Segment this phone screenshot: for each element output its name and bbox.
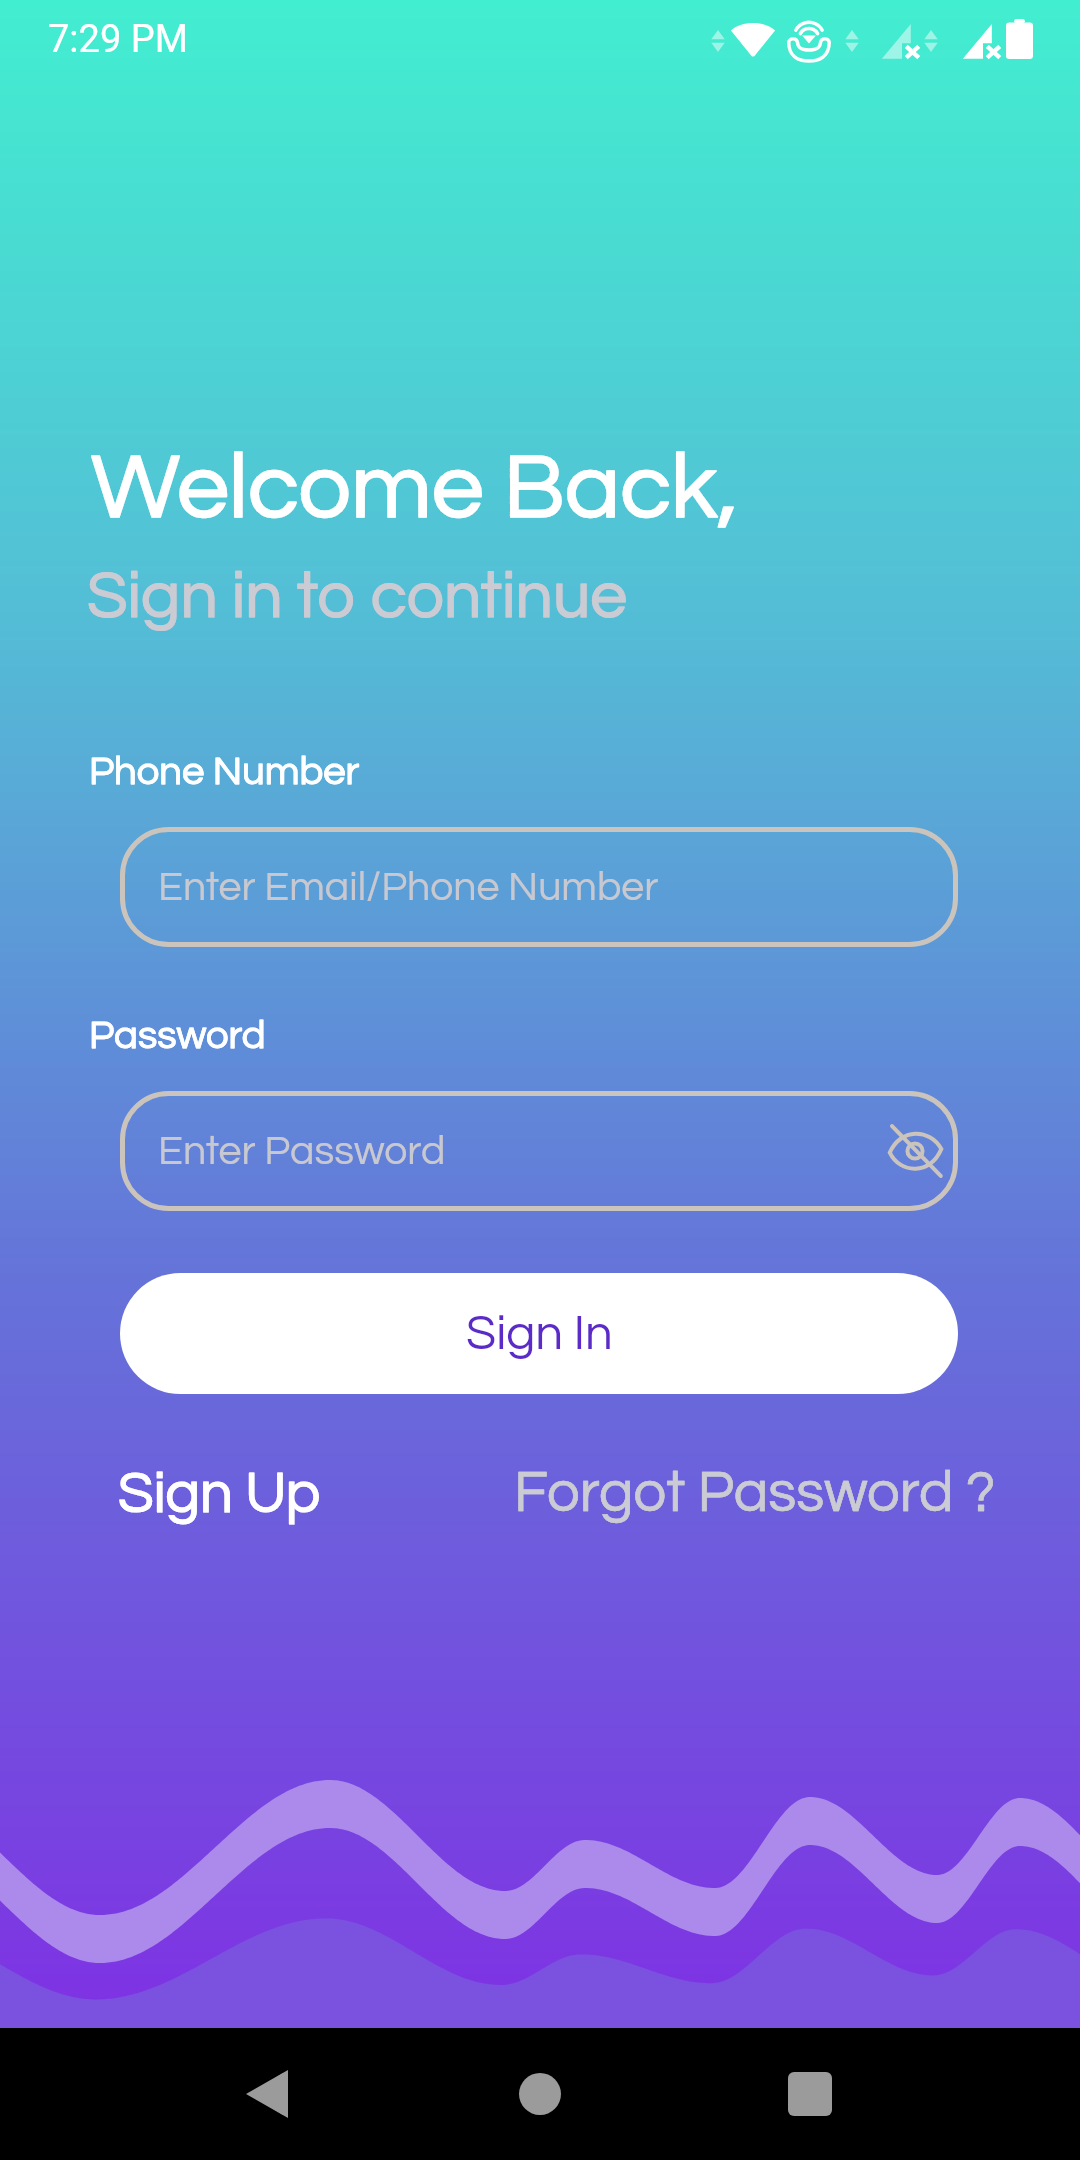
staticText: Forgot Password ? [514, 1463, 996, 1523]
button[interactable]: Sign In [120, 1273, 958, 1394]
staticText: Password [89, 1015, 266, 1056]
staticText: Sign Up [118, 1464, 321, 1524]
button[interactable]: Forgot Password ? [514, 1463, 996, 1523]
button[interactable]: Enter Password [120, 1091, 958, 1211]
staticText: Enter Password [158, 1130, 446, 1172]
button[interactable]: Home [480, 2053, 600, 2135]
button[interactable]: Back [207, 2053, 327, 2135]
staticText: Welcome Back, [91, 441, 738, 537]
staticText: Forgot Password ? [514, 1463, 996, 1523]
staticText: Enter Email/Phone Number [158, 866, 659, 908]
button[interactable]: Recent apps [750, 2053, 870, 2135]
staticText: 7:29 PM [48, 17, 188, 62]
staticText: Phone Number [89, 751, 360, 792]
button[interactable]: Sign Up [118, 1464, 321, 1524]
staticText: Phone Number [89, 751, 360, 792]
button[interactable]: Enter Email/Phone Number [120, 827, 958, 947]
staticText: Sign in to continue [87, 563, 628, 631]
staticText: Password [89, 1015, 266, 1056]
staticText: Sign In [466, 1309, 613, 1359]
staticText: Sign in to continue [87, 563, 628, 631]
button[interactable]: Toggle password visibility [887, 1125, 943, 1177]
staticText: Sign Up [118, 1464, 321, 1524]
staticText: Welcome Back, [91, 441, 738, 537]
